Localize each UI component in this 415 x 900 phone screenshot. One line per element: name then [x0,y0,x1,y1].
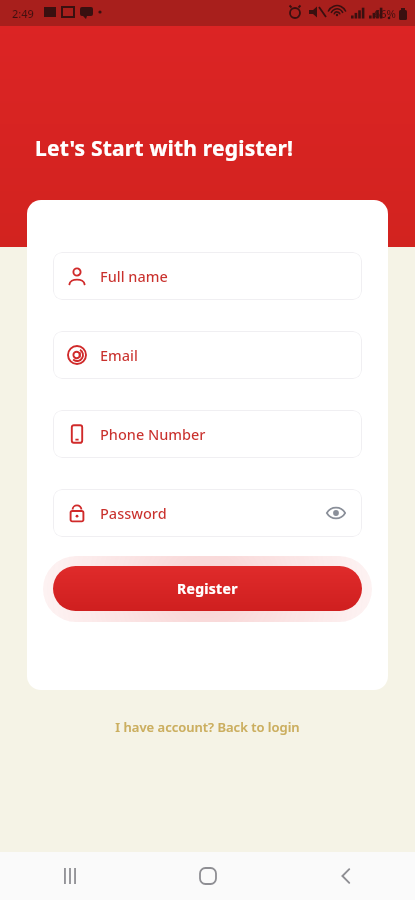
button[interactable]: Phone Number [53,410,362,458]
button[interactable]: Password [53,489,362,537]
button[interactable]: Full name [53,252,362,300]
staticText: Phone Number [100,424,206,444]
staticText: Register [177,579,238,598]
staticText: Email [100,345,138,365]
button[interactable]: Recent apps [0,852,139,900]
staticText: I have account? Back to login [115,718,300,736]
button[interactable]: Email [53,331,362,379]
button[interactable]: Back [277,852,415,900]
staticText: 66% [374,6,396,21]
staticText: 2:49 [12,6,34,21]
button[interactable]: Show password [324,501,348,525]
button[interactable]: Register [53,566,362,611]
staticText: Let's Start with register! [35,134,294,163]
staticText: Password [100,503,167,523]
staticText: Full name [100,266,168,286]
button[interactable]: I have account? Back to login [0,713,415,741]
button[interactable]: Home [139,852,277,900]
